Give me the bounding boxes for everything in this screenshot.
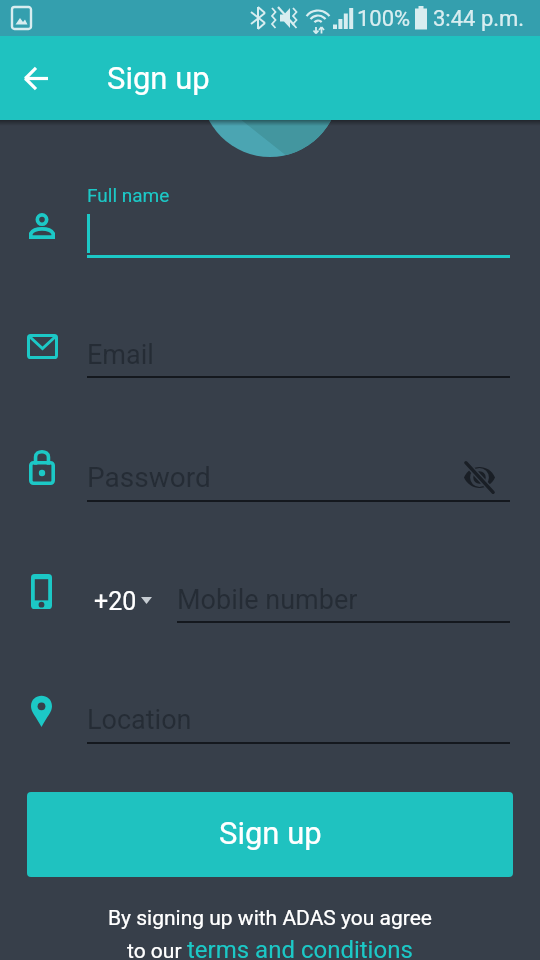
button[interactable]: Password — [0, 444, 540, 504]
staticText: 3:44 p.m. — [433, 6, 525, 32]
button[interactable]: Show password — [451, 449, 507, 505]
button[interactable]: Email — [0, 320, 540, 380]
staticText: to our — [127, 939, 187, 960]
staticText: Sign up — [107, 60, 210, 96]
staticText: By signing up with ADAS you agree — [108, 906, 432, 931]
button[interactable]: Location — [0, 686, 540, 746]
staticText: Mobile number — [177, 584, 358, 616]
staticText: Location — [87, 704, 192, 736]
button[interactable]: +20 — [84, 569, 164, 615]
button[interactable]: Back — [0, 36, 72, 120]
button[interactable]: Sign up — [27, 792, 513, 877]
staticText: Sign up — [219, 815, 322, 851]
staticText: 100% — [357, 6, 411, 32]
staticText: Email — [87, 339, 154, 371]
button[interactable]: Full name — [0, 180, 540, 260]
staticText: Full name — [87, 184, 170, 206]
button[interactable]: terms and conditions — [187, 936, 413, 960]
staticText: Password — [87, 461, 211, 494]
staticText: +20 — [94, 587, 137, 616]
button[interactable]: Profile photo — [201, 19, 339, 157]
